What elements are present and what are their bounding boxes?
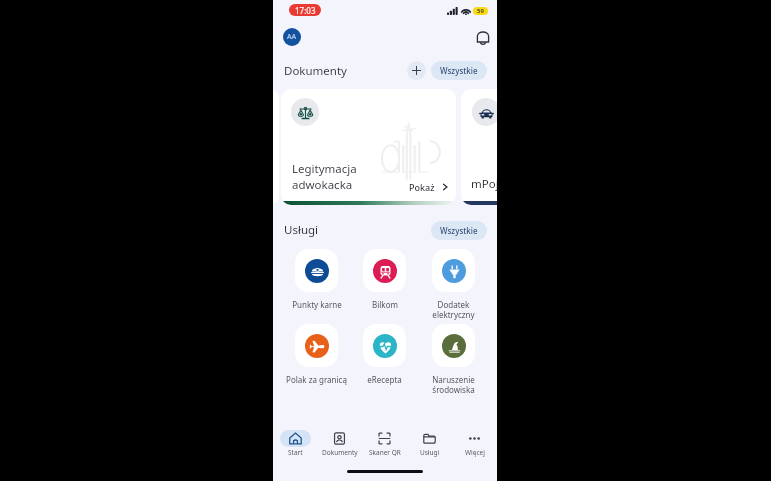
button[interactable]: Start xyxy=(273,423,317,463)
button[interactable]: Bilkom xyxy=(349,249,420,310)
staticText: Dodatek elektryczny xyxy=(432,299,475,321)
button[interactable]: Dodatek elektryczny xyxy=(418,249,489,321)
staticText: Więcej xyxy=(465,448,485,457)
staticText: Usługi xyxy=(420,448,440,457)
button[interactable]: Wszystkie xyxy=(431,61,487,80)
staticText: AA xyxy=(287,32,297,42)
staticText: Dokumenty xyxy=(322,448,358,457)
button[interactable]: Wszystkie xyxy=(431,221,487,240)
staticText: Naruszenie środowiska xyxy=(432,374,475,396)
staticText: eRecepta xyxy=(367,374,402,385)
button[interactable]: Więcej xyxy=(452,423,497,463)
button[interactable]: Legitymacja adwokacka xyxy=(281,89,456,205)
button[interactable]: Powiadomienia xyxy=(470,24,496,50)
staticText: Start xyxy=(288,448,303,457)
button[interactable]: Usługi xyxy=(407,423,452,463)
staticText: Wszystkie xyxy=(440,225,478,236)
button[interactable]: Skaner QR xyxy=(362,423,407,463)
staticText: Polak za granicą xyxy=(286,374,347,385)
staticText: 59 xyxy=(477,7,484,15)
button[interactable]: Naruszenie środowiska xyxy=(418,324,489,396)
button[interactable]: mPojazd xyxy=(461,89,497,205)
button[interactable]: Polak za granicą xyxy=(281,324,352,385)
staticText: Legitymacja adwokacka xyxy=(292,161,357,192)
button[interactable]: Punkty karne xyxy=(281,249,352,310)
staticText: Dokumenty xyxy=(284,63,347,79)
staticText: Bilkom xyxy=(372,299,398,310)
button[interactable]: Dodaj dokument xyxy=(407,61,426,80)
button[interactable]: Pokaż xyxy=(409,181,449,193)
staticText: 17:03 xyxy=(295,5,316,16)
button[interactable]: eRecepta xyxy=(349,324,420,385)
staticText: Punkty karne xyxy=(292,299,342,310)
button[interactable]: Dokumenty xyxy=(317,423,362,463)
staticText: Skaner QR xyxy=(369,448,401,457)
staticText: Wszystkie xyxy=(440,65,478,76)
button[interactable]: Profil uzytkownika AA xyxy=(283,28,301,46)
staticText: mPojazd xyxy=(471,176,497,192)
staticText: Pokaż xyxy=(409,181,435,193)
staticText: Usługi xyxy=(284,222,319,238)
